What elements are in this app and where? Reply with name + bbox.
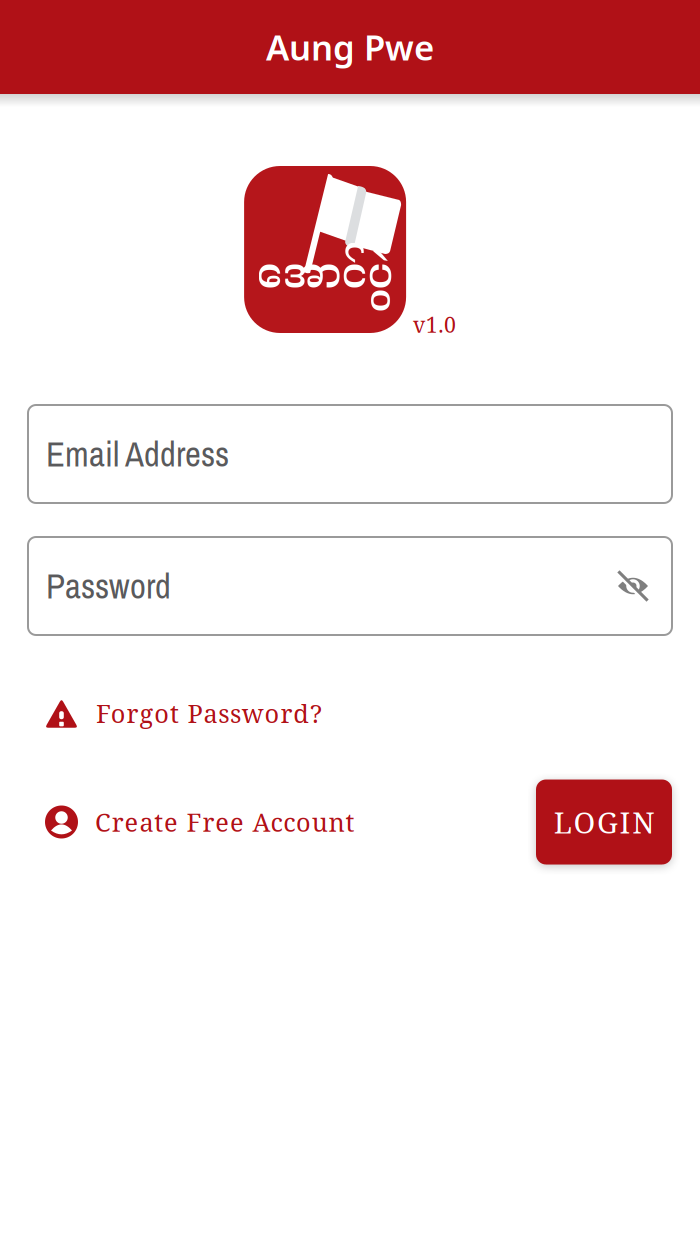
button[interactable]: Password <box>28 537 672 635</box>
staticText: v1.0 <box>413 310 456 339</box>
staticText: Forgot Password? <box>96 696 322 730</box>
staticText: Password <box>46 563 171 609</box>
staticText: Create Free Account <box>95 805 354 839</box>
button[interactable]: Email Address <box>28 405 672 503</box>
staticText: Email Address <box>46 431 229 477</box>
staticText: LOGIN <box>554 802 654 842</box>
button[interactable]: Create Free Account <box>28 805 354 839</box>
button[interactable]: Forgot Password? <box>28 696 322 730</box>
staticText: အောင်ပွဲ <box>257 236 394 340</box>
button[interactable]: LOGIN <box>536 779 672 864</box>
staticText: Aung Pwe <box>266 23 434 71</box>
